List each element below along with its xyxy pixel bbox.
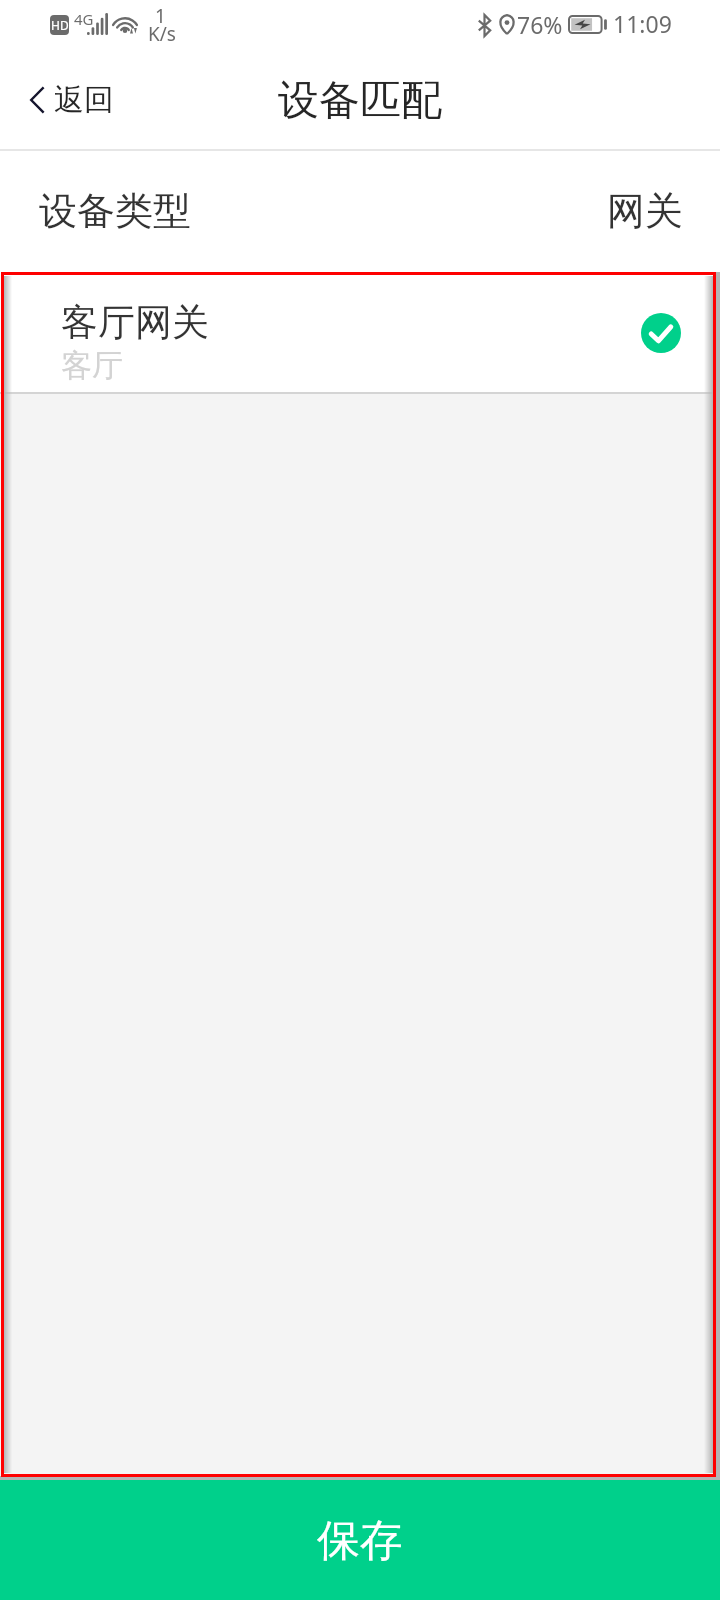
other: Back — [30, 87, 44, 113]
button[interactable]: 设备类型 — [0, 151, 720, 272]
staticText: 1 — [155, 3, 166, 29]
staticText: 设备类型 — [39, 187, 191, 235]
staticText: 客厅网关 — [61, 299, 209, 346]
staticText: 保存 — [317, 1514, 403, 1568]
staticText: 网关 — [607, 187, 683, 235]
staticText: HD — [51, 17, 69, 33]
button[interactable]: 保存 — [0, 1480, 720, 1600]
button[interactable]: Back — [0, 56, 138, 151]
staticText: 4G — [74, 9, 94, 29]
staticText: 11:09 — [613, 8, 672, 39]
staticText: 客厅 — [61, 346, 123, 385]
staticText: 76% — [517, 9, 563, 40]
button[interactable]: 客厅网关 — [0, 272, 720, 392]
staticText: K/s — [148, 21, 176, 47]
staticText: 设备匹配 — [278, 75, 442, 127]
staticText: 返回 — [54, 81, 114, 119]
